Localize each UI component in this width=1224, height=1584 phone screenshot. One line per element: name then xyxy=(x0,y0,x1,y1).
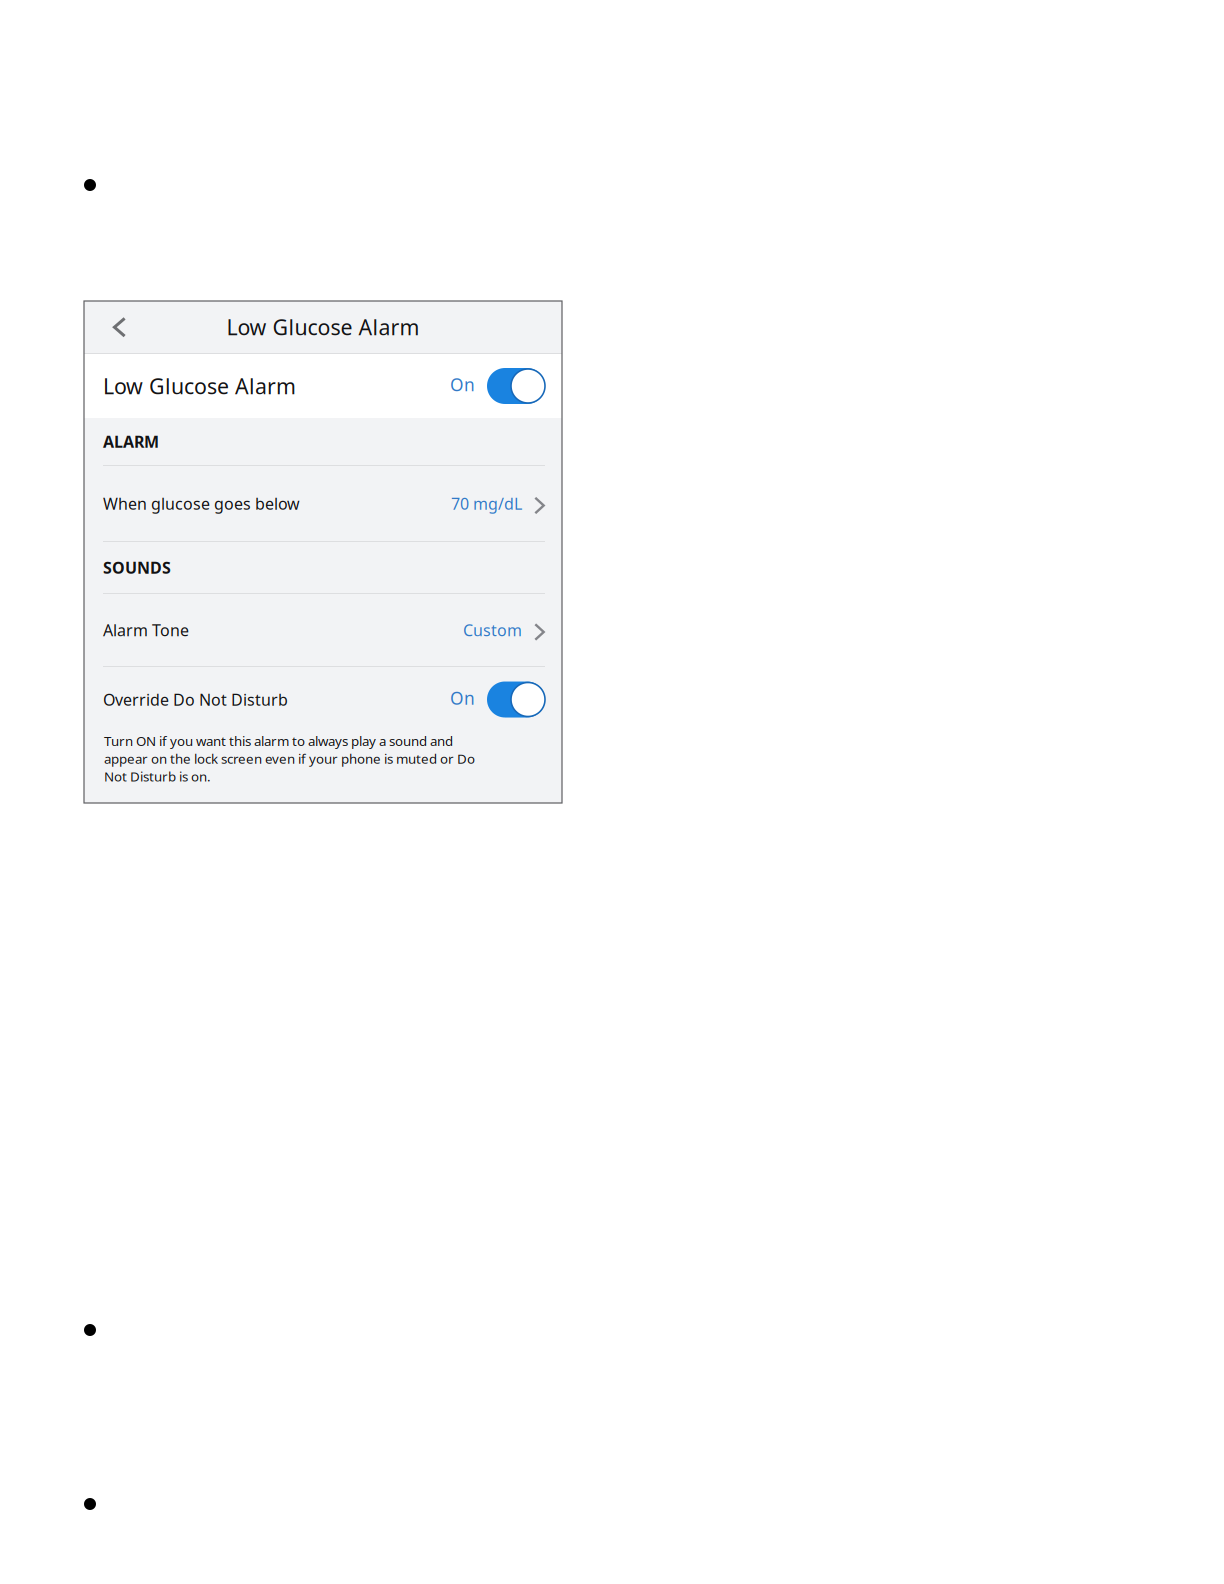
staticText: Alarm Tone xyxy=(103,619,189,641)
button[interactable]: Alarm Tone xyxy=(84,594,562,666)
button[interactable]: Override Do Not Disturb xyxy=(84,667,562,732)
staticText: Custom xyxy=(463,619,522,641)
button[interactable]: Back xyxy=(84,301,144,353)
staticText: When glucose goes below xyxy=(103,493,300,514)
staticText: 70 mg/dL xyxy=(451,493,522,514)
staticText: Low Glucose Alarm xyxy=(226,313,419,341)
staticText: On xyxy=(450,686,475,709)
staticText: Low Glucose Alarm xyxy=(103,372,296,400)
button[interactable]: Low Glucose Alarm xyxy=(84,354,562,418)
staticText: Turn ON if you want this alarm to always… xyxy=(104,732,475,785)
button[interactable]: When glucose goes below xyxy=(84,466,562,541)
staticText: On xyxy=(450,373,475,396)
staticText: SOUNDS xyxy=(103,557,171,578)
staticText: ALARM xyxy=(103,431,159,452)
staticText: Override Do Not Disturb xyxy=(103,689,288,710)
